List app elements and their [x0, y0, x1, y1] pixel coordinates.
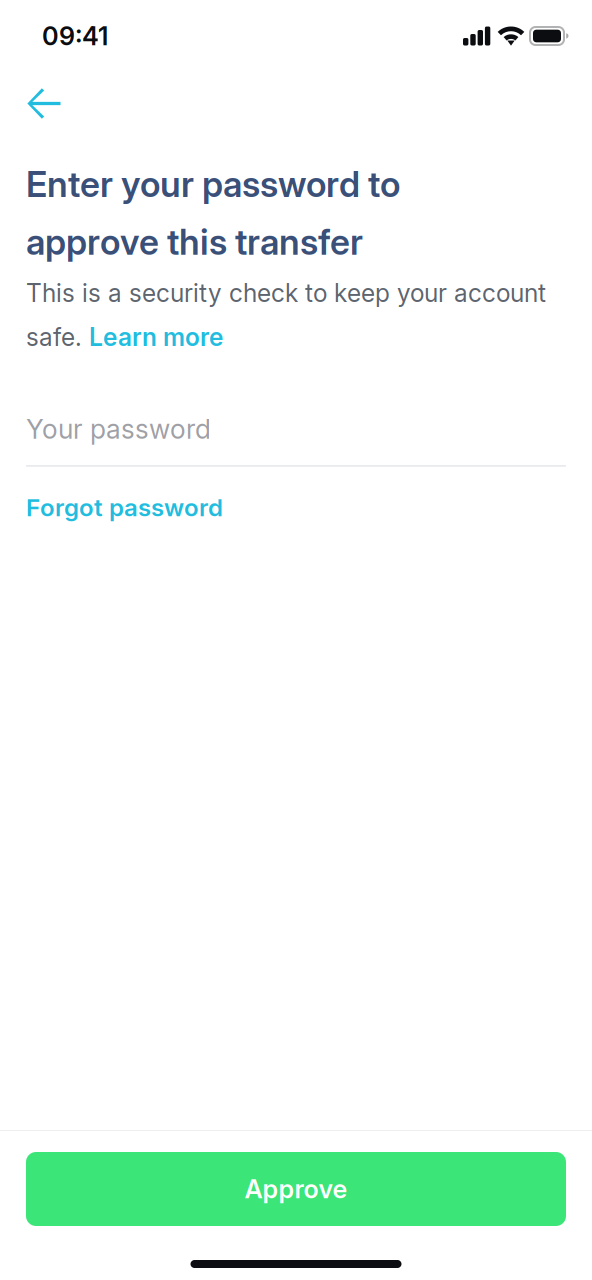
- button[interactable]: Forgot password: [0, 467, 247, 536]
- staticText: Your password: [26, 413, 211, 445]
- staticText: Enter your password to approve this tran…: [26, 163, 400, 263]
- staticText: Approve: [244, 1174, 347, 1204]
- button[interactable]: Back: [0, 72, 83, 135]
- staticText: 09:41: [42, 21, 108, 51]
- button[interactable]: Approve: [26, 1152, 566, 1226]
- staticText: This is a security check to keep your ac…: [26, 278, 546, 352]
- staticText: Forgot password: [26, 493, 223, 522]
